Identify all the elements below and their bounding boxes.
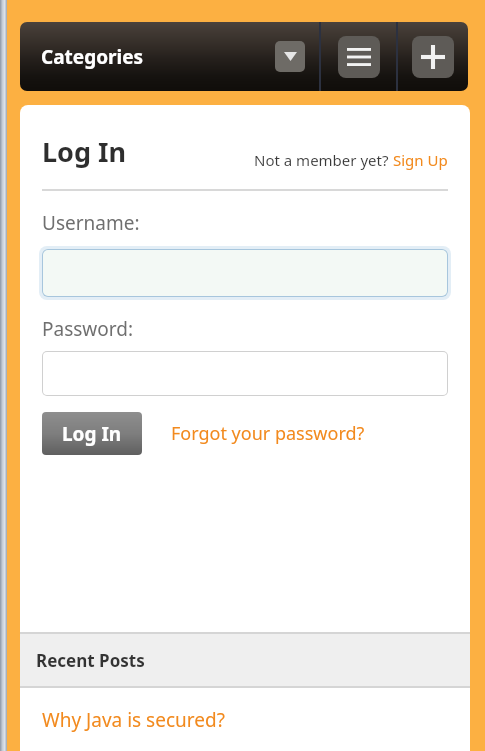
staticText: Log In bbox=[42, 133, 127, 170]
button[interactable]: Sign Up bbox=[393, 150, 448, 170]
button[interactable]: Why Java is secured? bbox=[20, 688, 470, 751]
button[interactable]: Add bbox=[398, 22, 468, 91]
button[interactable] bbox=[42, 249, 448, 297]
staticText: Forgot your password? bbox=[171, 421, 365, 446]
button[interactable]: Categories bbox=[20, 22, 319, 91]
button[interactable] bbox=[42, 351, 448, 396]
staticText: Log In bbox=[62, 421, 122, 447]
staticText: Recent Posts bbox=[36, 649, 145, 672]
staticText: Categories bbox=[41, 44, 144, 70]
staticText: Password: bbox=[42, 316, 134, 342]
button[interactable]: Log In bbox=[42, 412, 142, 455]
button[interactable]: Forgot your password? bbox=[171, 421, 365, 446]
button[interactable]: Menu bbox=[321, 22, 396, 91]
staticText: Not a member yet? bbox=[254, 150, 393, 170]
staticText: Username: bbox=[42, 210, 140, 236]
staticText: Sign Up bbox=[393, 150, 448, 170]
staticText: Why Java is secured? bbox=[42, 707, 225, 733]
